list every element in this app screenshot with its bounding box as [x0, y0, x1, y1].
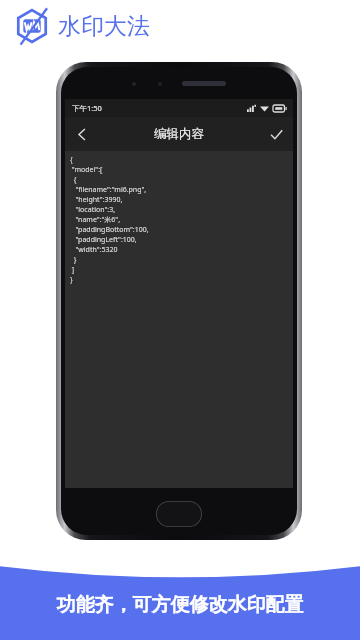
staticText: ]: [70, 265, 75, 275]
button[interactable]: {: [70, 155, 293, 285]
button[interactable]: Home: [156, 501, 202, 527]
button[interactable]: 水印大法: [14, 8, 150, 44]
button[interactable]: Confirm: [259, 117, 293, 151]
staticText: }: [70, 255, 77, 265]
staticText: {: [70, 175, 77, 185]
staticText: "paddingLeft":100,: [70, 235, 137, 245]
staticText: }: [70, 275, 73, 285]
staticText: "model":[: [70, 165, 103, 175]
staticText: 功能齐，可方便修改水印配置: [0, 593, 360, 617]
staticText: "location":3,: [70, 205, 116, 215]
staticText: "name":"米6",: [70, 215, 121, 225]
staticText: 下午1:50: [72, 103, 102, 113]
button[interactable]: Back: [65, 117, 99, 151]
staticText: "width":5320: [70, 245, 118, 255]
staticText: "paddingBottom":100,: [70, 225, 149, 235]
staticText: "height":3990,: [70, 195, 123, 205]
staticText: 编辑内容: [154, 126, 204, 142]
staticText: 水印大法: [58, 12, 150, 41]
staticText: {: [70, 155, 73, 165]
staticText: "filename":"mi6.png",: [70, 185, 147, 195]
